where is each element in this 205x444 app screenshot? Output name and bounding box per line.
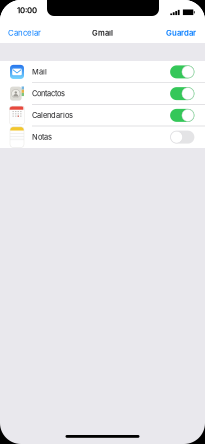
- staticText: Calendarios: [32, 111, 73, 120]
- button[interactable]: Contactos: [0, 83, 205, 105]
- button[interactable]: Guardar: [160, 23, 205, 43]
- button[interactable]: Calendarios: [0, 104, 205, 126]
- staticText: Contactos: [32, 89, 65, 98]
- staticText: Cancelar: [8, 28, 41, 38]
- staticText: Gmail: [92, 28, 113, 37]
- staticText: Notas: [32, 133, 52, 142]
- button[interactable]: Cancelar: [0, 23, 47, 43]
- staticText: Guardar: [166, 28, 196, 38]
- staticText: Mail: [32, 67, 47, 76]
- button[interactable]: Notas: [0, 126, 205, 148]
- button[interactable]: Mail: [0, 61, 205, 83]
- staticText: 10:00: [17, 6, 37, 15]
